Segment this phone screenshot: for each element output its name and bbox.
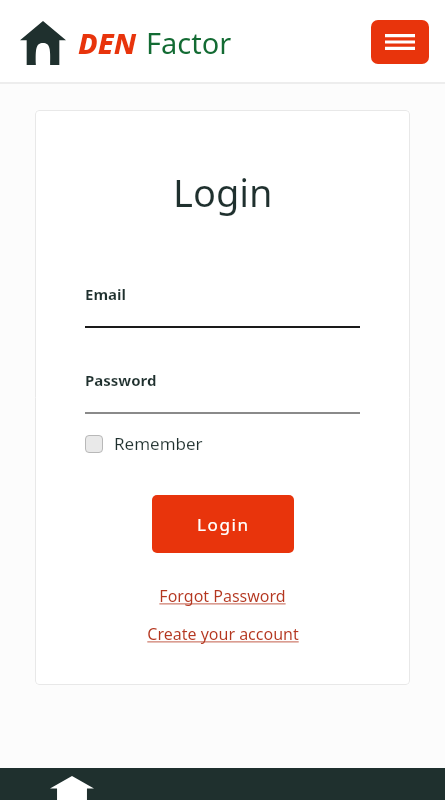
staticText: Email: [85, 284, 126, 304]
button[interactable]: Menu: [371, 20, 429, 64]
staticText: Login: [197, 513, 250, 536]
staticText: Create your account: [147, 623, 299, 645]
staticText: Login: [173, 166, 273, 218]
staticText: DEN: [78, 23, 137, 62]
button[interactable]: Forgot Password: [159, 585, 286, 607]
staticText: Password: [85, 370, 157, 390]
button[interactable]: Create your account: [147, 623, 299, 645]
button[interactable]: Remember: [85, 432, 203, 455]
staticText: Forgot Password: [159, 585, 286, 607]
button[interactable]: Login: [152, 495, 294, 553]
staticText: Remember: [114, 432, 203, 455]
staticText: Factor: [146, 23, 232, 62]
